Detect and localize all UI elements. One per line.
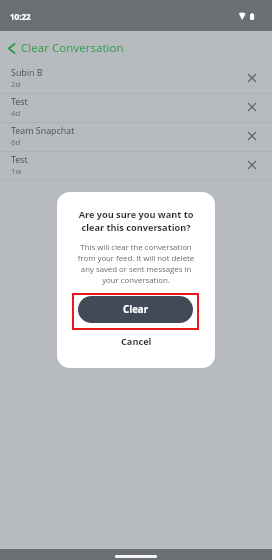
button[interactable]: Remove conversation <box>231 123 272 151</box>
staticText: Clear Conversation <box>21 40 124 56</box>
staticText: 10:22 <box>10 11 31 22</box>
button[interactable]: Remove conversation <box>231 152 272 180</box>
button[interactable]: Subin B <box>0 65 272 93</box>
staticText: Test <box>11 153 28 165</box>
staticText: 4d <box>11 108 21 119</box>
staticText: Cancel <box>121 335 152 348</box>
button[interactable]: Team Snapchat <box>0 123 272 151</box>
staticText: Test <box>11 95 28 107</box>
staticText: Subin B <box>11 66 43 78</box>
button[interactable]: Clear <box>78 296 193 323</box>
staticText: Clear <box>123 303 149 316</box>
staticText: This will clear the conversation from yo… <box>75 242 197 286</box>
staticText: 2d <box>11 79 21 90</box>
button[interactable]: Remove conversation <box>231 65 272 93</box>
staticText: 6d <box>11 137 21 148</box>
button[interactable]: Test <box>0 152 272 180</box>
button[interactable]: Remove conversation <box>231 94 272 122</box>
staticText: 1w <box>11 166 22 177</box>
button[interactable]: Test <box>0 94 272 122</box>
button[interactable]: Clear Conversation <box>0 31 272 65</box>
staticText: Are you sure you want to clear this conv… <box>76 208 196 234</box>
button[interactable]: Cancel <box>57 331 215 352</box>
staticText: Team Snapchat <box>11 124 75 136</box>
